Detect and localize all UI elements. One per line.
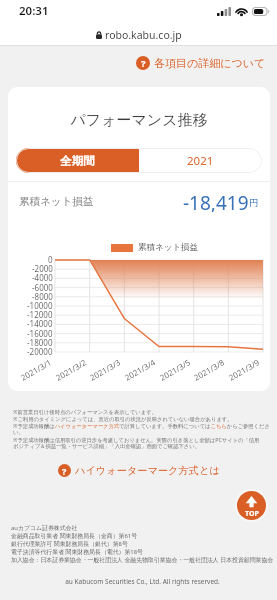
staticText: 0 bbox=[48, 254, 53, 265]
staticText: 2021/3/2 bbox=[53, 356, 88, 383]
staticText: 各項目の詳細について bbox=[154, 56, 266, 70]
staticText: -12000 bbox=[27, 309, 53, 320]
staticText: い。 bbox=[13, 429, 24, 436]
staticText: 加入協会：日本証券業協会・一般社団法人 金融先物取引業協会・一般社団法人 日本投… bbox=[11, 556, 274, 564]
button[interactable]: Scroll to top bbox=[235, 489, 268, 522]
button[interactable]: 2021 bbox=[139, 148, 262, 173]
staticText: 累積ネット損益 bbox=[138, 242, 199, 253]
staticText: ※予定成功報酬はハイウォーターマーク方式で計算しています。手数料についてはこちら… bbox=[13, 422, 270, 429]
staticText: -20000 bbox=[27, 346, 53, 357]
button[interactable]: ? bbox=[136, 55, 277, 71]
staticText: -2000 bbox=[32, 263, 53, 274]
staticText: -8000 bbox=[32, 291, 53, 302]
staticText: robo.kabu.co.jp bbox=[105, 28, 182, 42]
staticText: -18000 bbox=[27, 337, 53, 348]
staticText: ポジティブ＆損益一覧・サービス詳細」「入出金確認」画面でご確認下さい。 bbox=[13, 443, 200, 450]
staticText: -14000 bbox=[27, 318, 53, 329]
button[interactable]: ? bbox=[55, 462, 223, 479]
staticText: -18,419 bbox=[183, 190, 249, 212]
staticText: 金融商品取引業者 関東財務局長（金商）第61号 bbox=[11, 532, 138, 540]
staticText: 累積ネット損益 bbox=[19, 195, 94, 208]
staticText: ? bbox=[141, 57, 146, 70]
staticText: 2021/3/3 bbox=[87, 356, 122, 383]
staticText: auカブコム証券株式会社 bbox=[11, 524, 78, 532]
staticText: -6000 bbox=[32, 282, 53, 293]
staticText: TOP bbox=[245, 509, 259, 519]
staticText: 20:31 bbox=[19, 3, 49, 19]
staticText: 2021/3/5 bbox=[157, 356, 192, 383]
staticText: 円 bbox=[249, 197, 259, 209]
staticText: 全期間 bbox=[60, 154, 95, 168]
staticText: 電子決済等代行業者 関東財務局長（電代）第18号 bbox=[11, 548, 143, 556]
staticText: au Kabucom Securities Co., Ltd. All righ… bbox=[11, 577, 274, 586]
staticText: 2021 bbox=[187, 153, 214, 169]
button[interactable]: 全期間 bbox=[16, 148, 139, 173]
staticText: 2021/3/8 bbox=[191, 356, 226, 383]
staticText: ※前営業日引け後時点のパフォーマンスを表示しています。 bbox=[13, 408, 157, 415]
staticText: 2021/3/4 bbox=[122, 356, 157, 383]
staticText: ※予定成功報酬は信用取引の逆日歩を考慮しておりません。実際の引き落とし金額はPC… bbox=[13, 436, 260, 443]
staticText: 2021/3/9 bbox=[226, 356, 261, 383]
staticText: -10000 bbox=[27, 300, 53, 311]
staticText: 銀行代理業許可 関東財務局長（銀代）第8号 bbox=[11, 540, 128, 548]
staticText: ? bbox=[62, 465, 67, 477]
staticText: ※ご利用のタイミングによっては、直近の取引の状況が反映されていない場合があります… bbox=[13, 415, 233, 422]
staticText: パフォーマンス推移 bbox=[8, 111, 270, 130]
staticText: -4000 bbox=[32, 272, 53, 283]
staticText: 2021/3/1 bbox=[18, 356, 53, 383]
staticText: ハイウォーターマーク方式とは bbox=[75, 464, 220, 477]
staticText: -16000 bbox=[27, 328, 53, 339]
